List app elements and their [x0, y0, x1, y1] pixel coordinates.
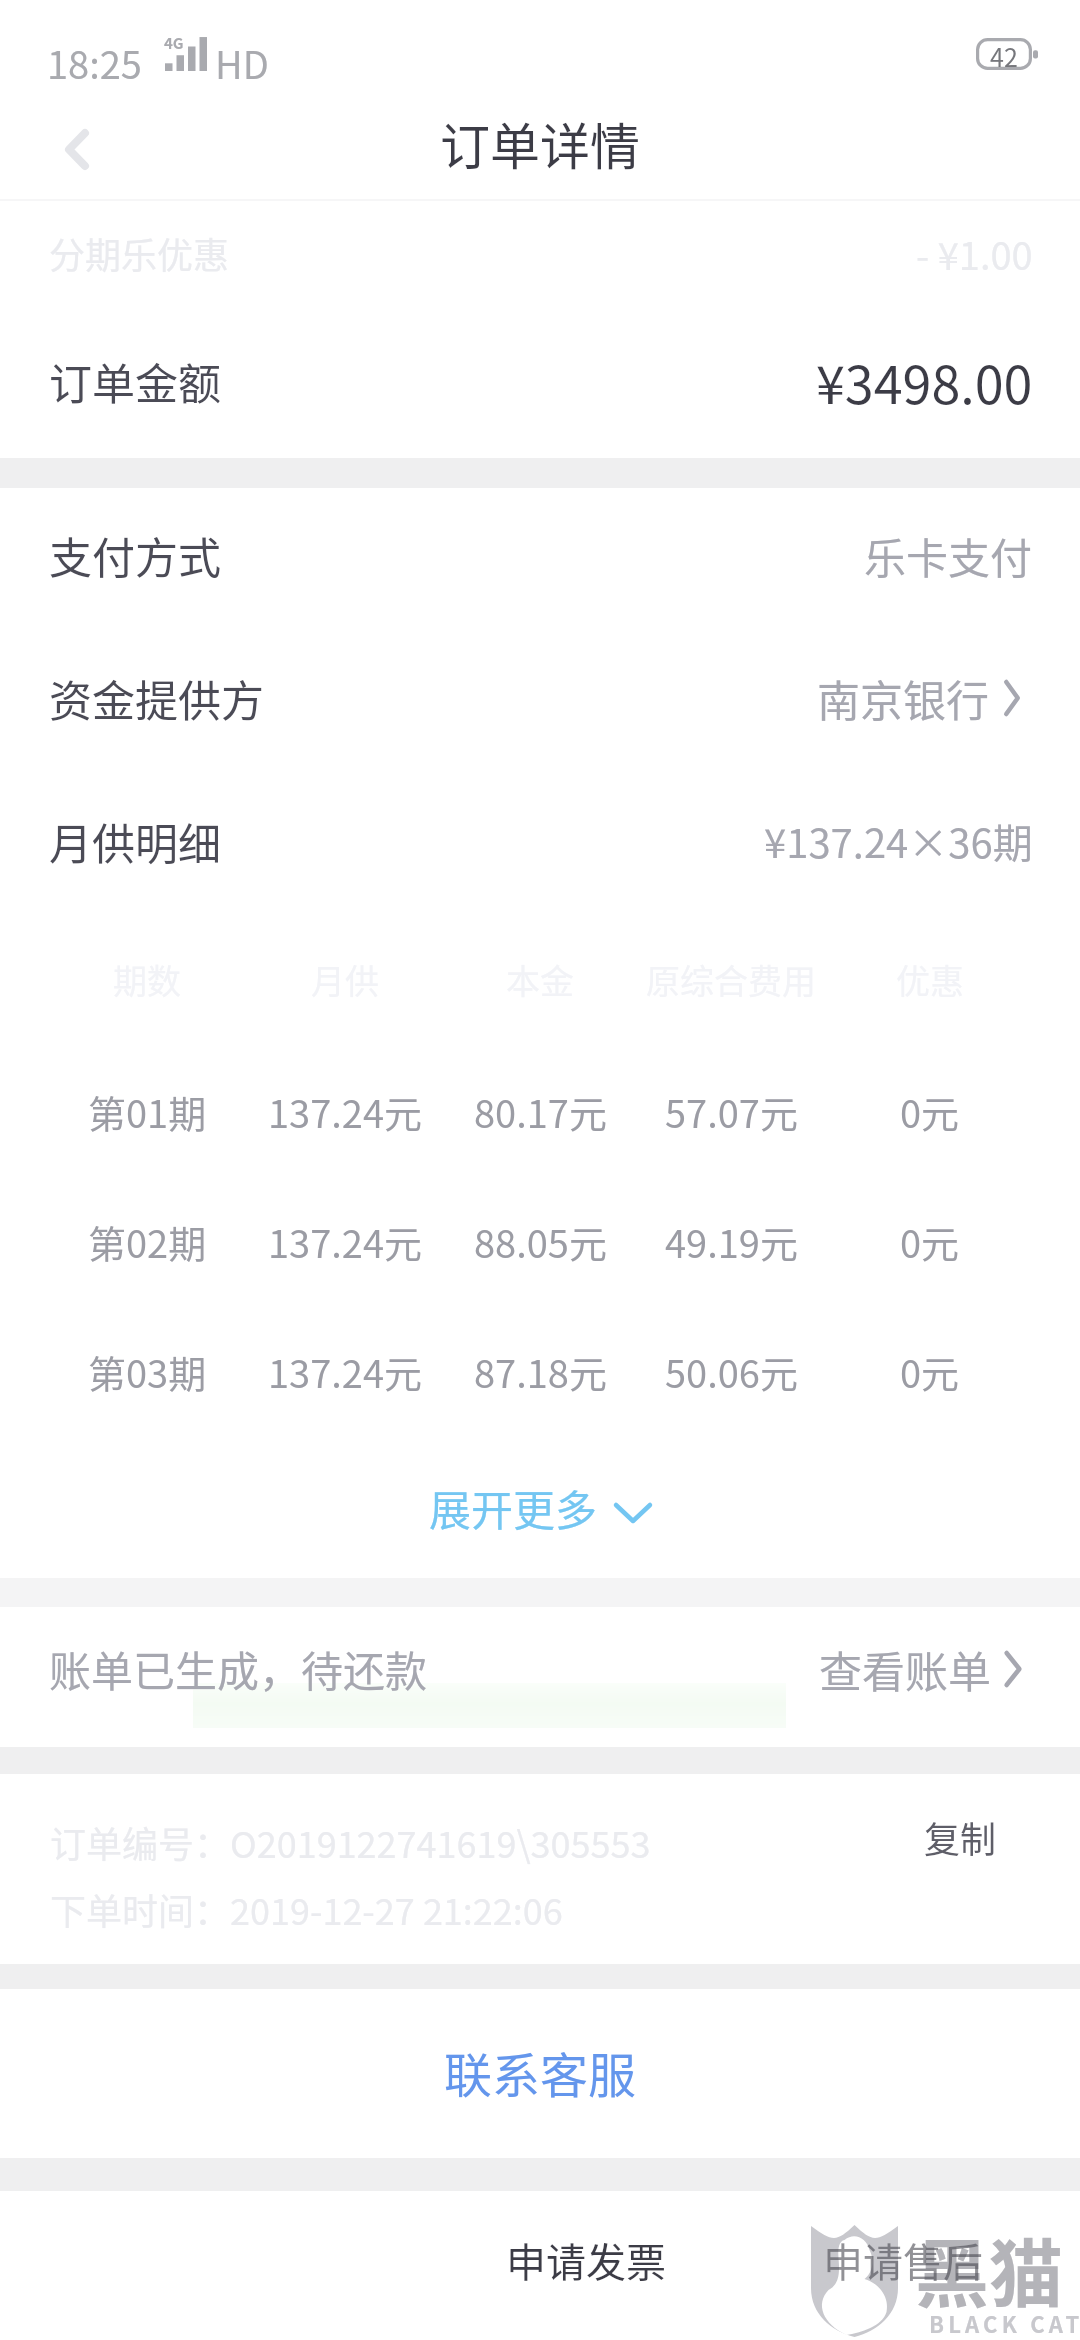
other: 4G signal strength: [165, 36, 208, 71]
staticText: 88.05元: [474, 1214, 607, 1269]
staticText: 49.19元: [665, 1214, 798, 1269]
staticText: 本金: [506, 955, 574, 1004]
button[interactable]: 申请发票: [456, 2215, 716, 2305]
staticText: BLACK CAT: [929, 2307, 1080, 2339]
button[interactable]: 申请售后: [773, 2215, 1033, 2305]
staticText: 0元: [900, 1214, 960, 1269]
staticText: 87.18元: [474, 1344, 607, 1399]
button[interactable]: 复制: [890, 1797, 1030, 1877]
button[interactable]: 展开更多: [399, 1459, 682, 1556]
staticText: 原综合费用: [646, 955, 816, 1004]
staticText: 联系客服: [444, 2037, 637, 2107]
staticText: 展开更多: [429, 1477, 598, 1538]
staticText: 查看账单: [819, 1638, 991, 1700]
button[interactable]: 账单已生成，待还款: [0, 1608, 1080, 1729]
button[interactable]: 联系客服: [0, 1992, 1080, 2152]
staticText: 黑猫: [915, 2215, 1063, 2322]
staticText: 第01期: [88, 1084, 207, 1139]
staticText: 订单金额: [49, 350, 221, 412]
staticText: 支付方式: [49, 524, 221, 586]
staticText: 账单已生成，待还款: [49, 1638, 428, 1699]
staticText: 订单详情: [440, 107, 640, 179]
staticText: 137.24元: [268, 1344, 423, 1399]
staticText: 资金提供方: [49, 667, 264, 729]
staticText: ¥137.24×36期: [764, 812, 1033, 870]
staticText: - ¥1.00: [916, 226, 1033, 281]
button[interactable]: 月供明细: [0, 786, 1080, 896]
staticText: 月供: [311, 955, 379, 1004]
staticText: 期数: [113, 955, 181, 1004]
staticText: 优惠: [896, 955, 964, 1004]
staticText: 分期乐优惠: [49, 227, 230, 279]
staticText: HD: [215, 35, 269, 90]
staticText: 57.07元: [665, 1084, 798, 1139]
staticText: 乐卡支付: [864, 525, 1033, 586]
staticText: 月供明细: [49, 810, 221, 872]
staticText: 4G: [164, 32, 184, 54]
staticText: 137.24元: [268, 1084, 423, 1139]
staticText: 0元: [900, 1344, 960, 1399]
staticText: ¥3498.00: [816, 344, 1033, 419]
staticText: 18:25: [47, 35, 142, 90]
button[interactable]: 订单金额: [0, 326, 1080, 436]
staticText: 第02期: [88, 1214, 207, 1269]
staticText: 0元: [900, 1084, 960, 1139]
staticText: 申请售后: [823, 2231, 983, 2289]
staticText: 复制: [924, 1811, 997, 1863]
staticText: 137.24元: [268, 1214, 423, 1269]
staticText: 南京银行: [817, 667, 989, 729]
staticText: 50.06元: [665, 1344, 798, 1399]
button[interactable]: 分期乐优惠: [0, 198, 1080, 308]
button[interactable]: Back: [0, 99, 150, 199]
staticText: 订单编号：O2019122741619\305553: [50, 1816, 651, 1868]
button[interactable]: 资金提供方: [0, 643, 1080, 753]
button[interactable]: 支付方式: [0, 500, 1080, 610]
staticText: 80.17元: [474, 1084, 607, 1139]
staticText: 42: [990, 38, 1018, 70]
staticText: 申请发票: [506, 2231, 666, 2289]
other: Battery 42 percent: [976, 38, 1036, 70]
staticText: 下单时间：2019-12-27 21:22:06: [50, 1883, 563, 1935]
staticText: 第03期: [88, 1344, 207, 1399]
